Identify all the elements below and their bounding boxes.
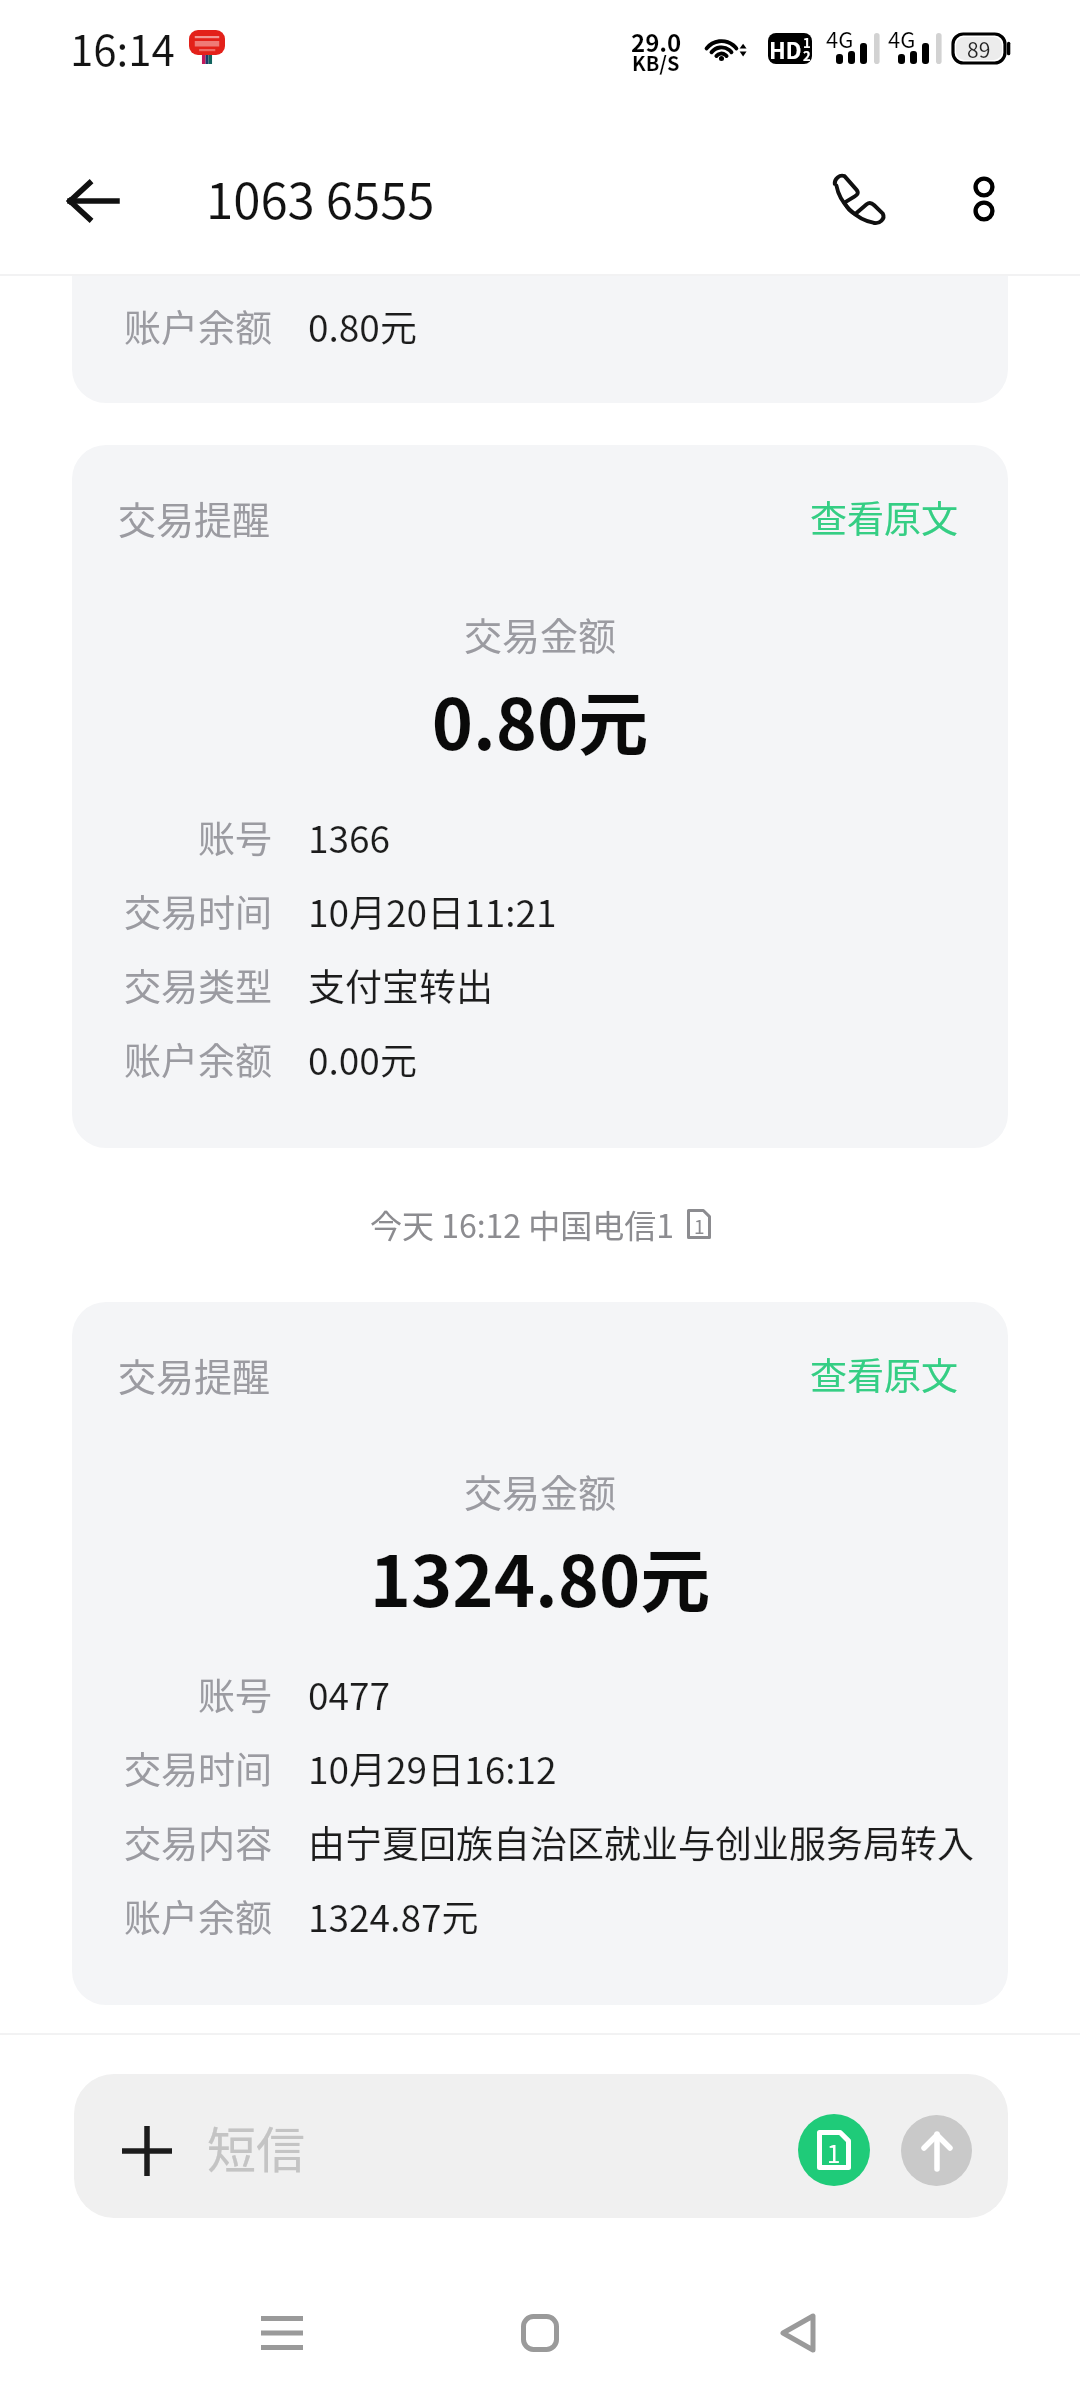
staticText: 89 (967, 34, 991, 64)
button[interactable]: 交易提醒 (72, 1302, 1008, 2005)
staticText: 账户余额 (124, 1032, 272, 1086)
button[interactable]: More options (938, 153, 1030, 245)
staticText: 交易类型 (124, 958, 272, 1012)
staticText: 1324.80元 (72, 1526, 1008, 1627)
staticText: 由宁夏回族自治区就业与创业服务局转入 (308, 1815, 974, 1869)
staticText: HD (769, 33, 802, 64)
staticText: 1 (827, 2135, 841, 2170)
staticText: 0.80元 (72, 669, 1008, 770)
button[interactable]: 账户余额 (72, 276, 1008, 403)
button[interactable]: Call (812, 153, 904, 245)
staticText: 16:14 (70, 17, 175, 78)
staticText: 1366 (308, 810, 391, 864)
button[interactable]: Back (50, 159, 134, 243)
button[interactable]: Back (748, 2300, 848, 2366)
staticText: 1324.87元 (308, 1889, 479, 1943)
staticText: 1 (694, 1212, 705, 1240)
staticText: 29.0 (631, 24, 682, 59)
staticText: 查看原文 (810, 490, 958, 544)
button[interactable]: Home (490, 2300, 590, 2366)
staticText: 交易时间 (124, 884, 272, 938)
staticText: 账户余额 (124, 1889, 272, 1943)
staticText: 10月29日16:12 (308, 1741, 557, 1795)
staticText: 0.80元 (308, 299, 417, 353)
button[interactable]: Recent apps (232, 2300, 332, 2366)
staticText: 4G (888, 22, 916, 53)
button[interactable]: 查看原文 (806, 1346, 962, 1402)
button[interactable]: 查看原文 (806, 489, 962, 545)
button[interactable]: 交易提醒 (72, 445, 1008, 1148)
staticText: 0.00元 (308, 1032, 417, 1086)
staticText: 交易提醒 (118, 1347, 271, 1402)
staticText: 支付宝转出 (308, 958, 493, 1012)
staticText: 账号 (198, 1667, 272, 1721)
button[interactable]: Send (901, 2115, 972, 2186)
staticText: 交易提醒 (118, 490, 271, 545)
staticText: 交易时间 (124, 1741, 272, 1795)
staticText: 1063 6555 (206, 162, 435, 233)
staticText: 查看原文 (810, 1347, 958, 1401)
button[interactable]: Add attachment (110, 2114, 184, 2188)
staticText: 交易金额 (72, 1463, 1008, 1518)
staticText: 交易内容 (124, 1815, 272, 1869)
staticText: 4G (826, 22, 854, 53)
staticText: 2 (803, 46, 811, 64)
staticText: 1 (803, 33, 811, 52)
staticText: 0477 (308, 1667, 391, 1721)
staticText: 交易金额 (72, 606, 1008, 661)
staticText: KB/S (632, 48, 680, 77)
staticText: 今天 16:12 中国电信1 (370, 1201, 675, 1247)
staticText: 10月20日11:21 (308, 884, 557, 938)
button[interactable]: Add attachment (74, 2074, 1008, 2218)
staticText: 账户余额 (124, 299, 272, 353)
staticText: 账号 (198, 810, 272, 864)
staticText: 短信 (207, 2111, 306, 2182)
button[interactable]: SIM 1 (798, 2114, 870, 2186)
